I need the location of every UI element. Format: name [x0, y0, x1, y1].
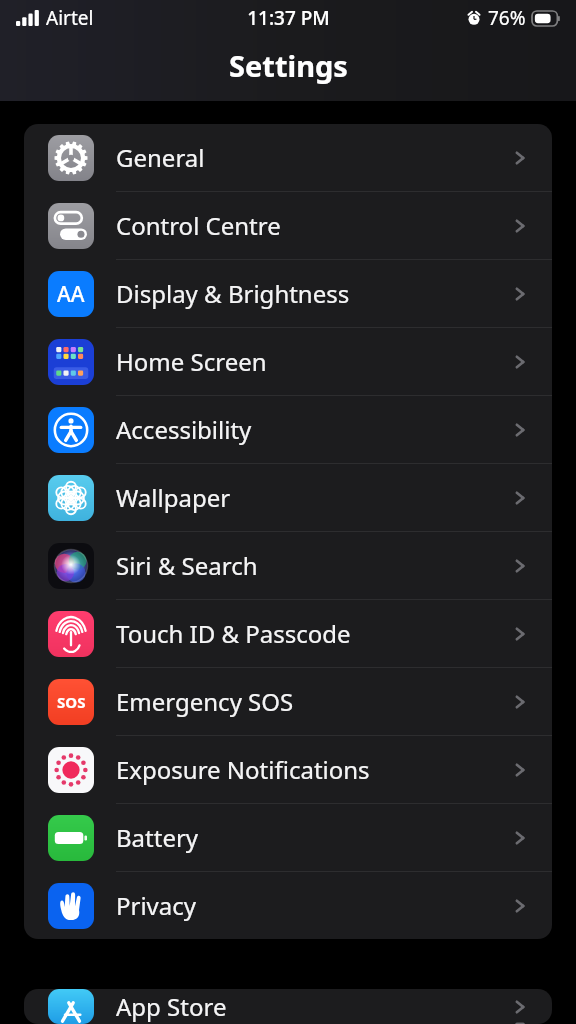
- staticText: 76%: [488, 5, 526, 31]
- staticText: Siri & Search: [116, 549, 258, 582]
- button[interactable]: SOS: [24, 668, 552, 735]
- staticText: Settings: [229, 46, 348, 85]
- staticText: 11:37 PM: [247, 5, 330, 31]
- staticText: Airtel: [46, 5, 94, 31]
- staticText: General: [116, 141, 205, 174]
- staticText: Wallpaper: [116, 481, 231, 514]
- button[interactable]: AA: [24, 260, 552, 327]
- button[interactable]: Siri & Search: [24, 532, 552, 599]
- staticText: Emergency SOS: [116, 685, 294, 718]
- button[interactable]: Touch ID & Passcode: [24, 600, 552, 667]
- staticText: Privacy: [116, 889, 197, 922]
- staticText: Display & Brightness: [116, 277, 350, 310]
- staticText: Battery: [116, 821, 199, 854]
- button[interactable]: Exposure Notifications: [24, 736, 552, 803]
- staticText: Home Screen: [116, 345, 267, 378]
- staticText: SOS: [57, 692, 86, 712]
- staticText: App Store: [116, 990, 227, 1023]
- staticText: Touch ID & Passcode: [116, 617, 351, 650]
- staticText: Control Centre: [116, 209, 281, 242]
- staticText: Exposure Notifications: [116, 753, 370, 786]
- button[interactable]: Battery: [24, 804, 552, 871]
- staticText: Accessibility: [116, 413, 252, 446]
- button[interactable]: Wallpaper: [24, 464, 552, 531]
- staticText: AA: [57, 280, 85, 309]
- other: Alarm set: [466, 10, 482, 26]
- button[interactable]: Home Screen: [24, 328, 552, 395]
- button[interactable]: App Store: [24, 989, 552, 1024]
- button[interactable]: General: [24, 124, 552, 191]
- button[interactable]: Control Centre: [24, 192, 552, 259]
- button[interactable]: Privacy: [24, 872, 552, 939]
- button[interactable]: Accessibility: [24, 396, 552, 463]
